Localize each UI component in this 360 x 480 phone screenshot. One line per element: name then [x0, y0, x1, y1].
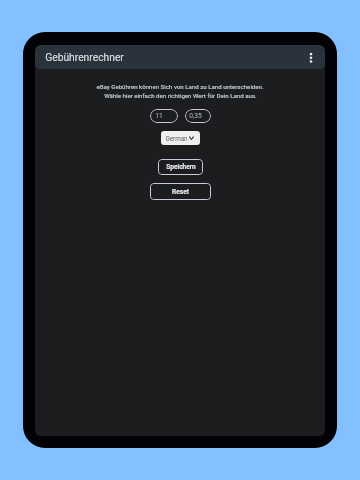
staticText: Gebührenrechner	[45, 51, 124, 63]
button[interactable]: 0,35	[185, 109, 211, 123]
staticText: German	[165, 135, 188, 142]
staticText: Reset	[172, 188, 189, 196]
staticText: 11	[155, 112, 163, 120]
staticText: Wähle hier einfach den richtigen Wert fü…	[104, 92, 257, 99]
button[interactable]: Reset	[150, 183, 211, 200]
button[interactable]: Speichern	[158, 159, 203, 175]
button[interactable]: More options	[304, 50, 318, 64]
staticText: Speichern	[166, 163, 196, 171]
staticText: 0,35	[189, 112, 202, 120]
button[interactable]: 11	[150, 109, 178, 123]
button[interactable]: German	[161, 131, 200, 145]
staticText: eBay Gebühren können Sich von Land zu La…	[96, 83, 264, 90]
button[interactable]: Gebührenrechner	[35, 45, 325, 69]
